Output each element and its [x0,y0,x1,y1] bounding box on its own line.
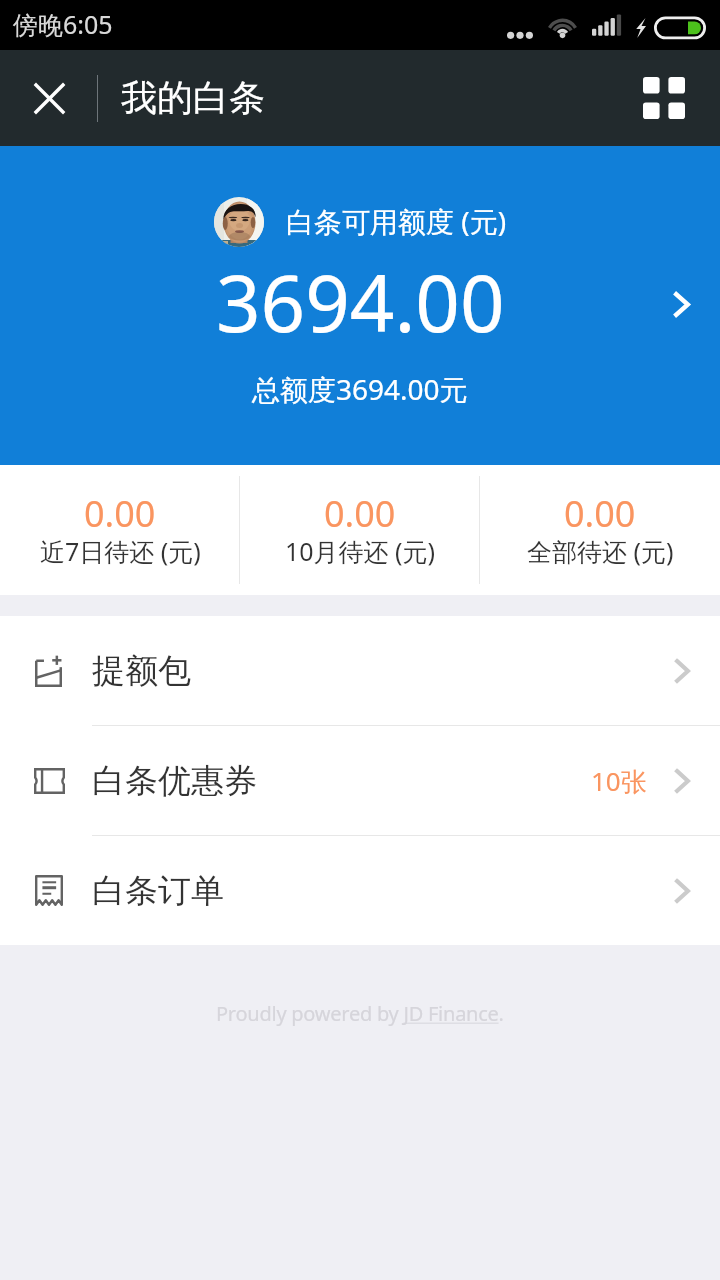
button[interactable]: 白条优惠券 [0,726,720,835]
staticText: 傍晚6:05 [13,7,113,41]
button[interactable]: Proudly powered by JD Finance. [216,1000,504,1027]
button[interactable]: 0.00 [240,465,480,595]
staticText: 总额度3694.00元 [252,370,468,408]
staticText: 0.00 [324,489,396,538]
staticText: 10月待还 (元) [285,534,436,568]
button[interactable]: Close [0,50,96,146]
button[interactable]: 0.00 [0,465,240,595]
staticText: 近7日待还 (元) [40,534,201,568]
button[interactable]: 白条订单 [0,836,720,945]
button[interactable]: 提额包 [0,616,720,725]
staticText: 0.00 [564,489,636,538]
staticText: 我的白条 [121,75,265,120]
staticText: 全部待还 (元) [527,534,674,568]
staticText: 白条可用额度 (元) [286,202,507,240]
staticText: 白条优惠券 [92,760,257,802]
staticText: 提额包 [92,650,191,692]
button[interactable]: 白条可用额度 3694.00 元，查看详情 [0,146,720,465]
staticText: Proudly powered by JD Finance. [216,1000,504,1027]
staticText: 白条订单 [92,870,224,912]
staticText: 0.00 [84,489,156,538]
staticText: 10张 [591,763,647,799]
button[interactable]: Grid menu [616,50,712,146]
staticText: 3694.00 [216,249,505,355]
button[interactable]: 0.00 [480,465,720,595]
